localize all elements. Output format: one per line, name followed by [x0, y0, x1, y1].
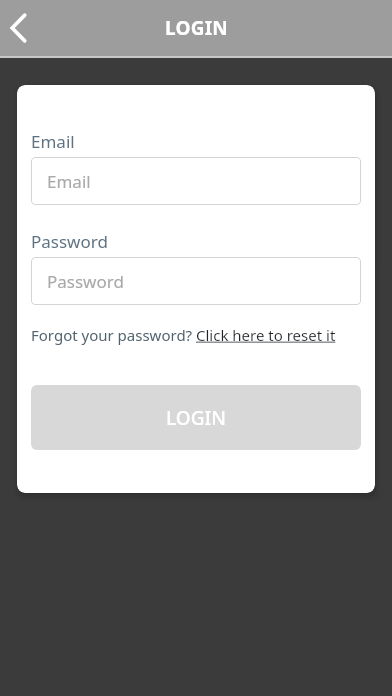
button[interactable]: Password: [31, 257, 361, 305]
staticText: Email: [47, 170, 91, 193]
button[interactable]: Forgot your password? Click here to rese…: [31, 325, 336, 345]
staticText: Password: [31, 230, 108, 253]
staticText: LOGIN: [166, 405, 226, 431]
staticText: LOGIN: [165, 15, 228, 41]
button[interactable]: Email: [31, 157, 361, 205]
staticText: Email: [31, 130, 75, 153]
button[interactable]: LOGIN: [31, 385, 361, 450]
button[interactable]: [6, 7, 48, 49]
staticText: Password: [47, 270, 124, 293]
